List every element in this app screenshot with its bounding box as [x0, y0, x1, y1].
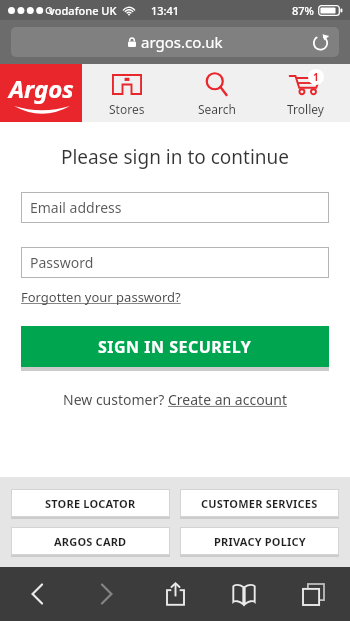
staticText: Email address	[30, 198, 122, 217]
staticText: SIGN IN SECURELY	[98, 336, 252, 358]
staticText: 1	[313, 70, 319, 84]
button[interactable]: PRIVACY POLICY	[180, 527, 339, 557]
button[interactable]: Forward	[79, 569, 133, 619]
button[interactable]: 1	[261, 64, 350, 122]
button[interactable]: Search	[172, 64, 261, 122]
staticText: Create an account	[168, 390, 287, 409]
staticText: STORE LOCATOR	[45, 496, 136, 511]
staticText: vodafone UK	[49, 3, 117, 18]
button[interactable]: Tabs	[286, 569, 340, 619]
staticText: ARGOS CARD	[54, 534, 127, 549]
staticText: CUSTOMER SERVICES	[201, 496, 318, 511]
button[interactable]: Share	[148, 569, 202, 619]
staticText: Stores	[109, 101, 145, 117]
button[interactable]: SIGN IN SECURELY	[21, 326, 329, 371]
button[interactable]: Create an account	[168, 390, 287, 409]
staticText: argos.co.uk	[141, 32, 223, 52]
staticText: Please sign in to continue	[0, 144, 350, 170]
button[interactable]: Email address	[21, 192, 329, 223]
staticText: New customer?	[63, 390, 168, 409]
button[interactable]: ARGOS CARD	[11, 527, 170, 557]
staticText: Trolley	[287, 101, 324, 117]
button[interactable]: Reload page	[309, 31, 331, 53]
button[interactable]: Bookmarks	[217, 569, 271, 619]
staticText: 87%	[292, 3, 314, 18]
staticText: 13:41	[151, 3, 180, 18]
button[interactable]: Back	[10, 569, 64, 619]
button[interactable]: Forgotten your password?	[21, 288, 181, 306]
staticText: Password	[30, 253, 94, 272]
button[interactable]: CUSTOMER SERVICES	[180, 489, 339, 519]
button[interactable]: STORE LOCATOR	[11, 489, 170, 519]
staticText: Argos	[9, 72, 74, 105]
button[interactable]: argos.co.uk	[11, 27, 339, 57]
button[interactable]: Stores	[82, 64, 172, 122]
button[interactable]: Password	[21, 247, 329, 278]
staticText: Forgotten your password?	[21, 288, 181, 306]
staticText: Search	[198, 101, 236, 117]
staticText: PRIVACY POLICY	[214, 534, 306, 549]
button[interactable]: Argos home	[0, 64, 82, 122]
